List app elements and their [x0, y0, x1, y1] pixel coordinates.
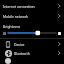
button[interactable]: More settings — [0, 58, 64, 64]
staticText: Mobile network — [3, 14, 57, 19]
button[interactable]: Mobile network — [0, 12, 64, 20]
staticText: Brightness — [3, 24, 21, 29]
button[interactable]: Device — [0, 40, 64, 48]
staticText: Device — [14, 42, 57, 47]
staticText: Internet connection — [3, 4, 57, 9]
button[interactable]: Brightness slider — [0, 29, 64, 37]
button[interactable]: Bluetooth — [0, 49, 64, 57]
staticText: Bluetooth — [14, 51, 57, 56]
button[interactable]: Internet connection — [0, 2, 64, 10]
